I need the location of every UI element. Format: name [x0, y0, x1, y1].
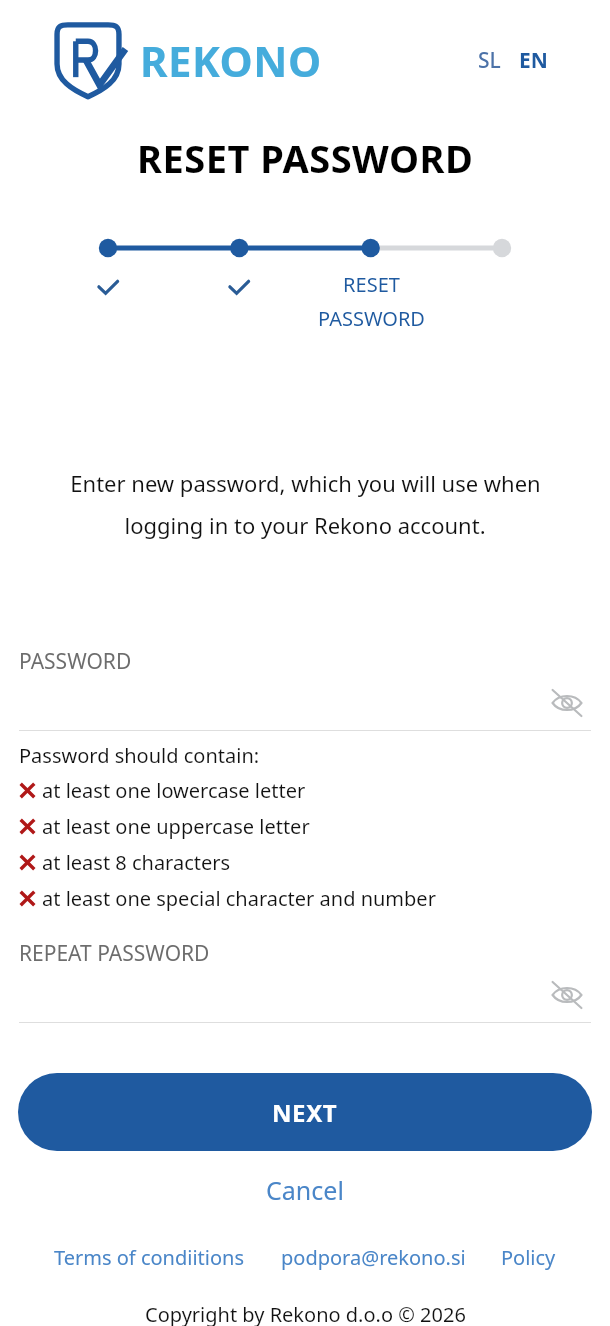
staticText: Copyright by Rekono d.o.o © 2026 [145, 1301, 466, 1326]
staticText: Password should contain: [19, 742, 260, 769]
staticText: RESET PASSWORD [137, 132, 474, 184]
staticText: NEXT [272, 1096, 338, 1129]
staticText: at least one uppercase letter [42, 813, 310, 840]
button[interactable]: NEXT [18, 1073, 592, 1151]
button[interactable]: Cancel [252, 1167, 358, 1213]
button[interactable]: Policy [499, 1240, 558, 1275]
staticText: Terms of condiitions [54, 1244, 245, 1271]
button[interactable]: SL [476, 42, 503, 79]
staticText: at least one lowercase letter [42, 777, 306, 804]
staticText: Policy [501, 1244, 556, 1271]
staticText: at least 8 characters [42, 849, 231, 876]
button[interactable]: podpora@rekono.si [279, 1240, 468, 1275]
staticText: SL [478, 46, 501, 75]
button[interactable]: Terms of condiitions [52, 1240, 247, 1275]
staticText: EN [519, 46, 548, 75]
staticText: Enter new password, which you will use w… [70, 468, 541, 498]
staticText: at least one special character and numbe… [42, 885, 436, 912]
staticText: REPEAT PASSWORD [19, 939, 210, 968]
staticText: PASSWORD [19, 647, 132, 676]
staticText: REKONO [140, 32, 322, 89]
button[interactable]: Show password [543, 971, 591, 1019]
staticText: PASSWORD [318, 305, 425, 332]
staticText: RESET [343, 271, 400, 298]
staticText: podpora@rekono.si [281, 1244, 466, 1271]
staticText: logging in to your Rekono account. [124, 510, 486, 540]
staticText: Cancel [266, 1173, 344, 1207]
button[interactable]: Show password [543, 679, 591, 727]
button[interactable]: EN [517, 42, 550, 79]
